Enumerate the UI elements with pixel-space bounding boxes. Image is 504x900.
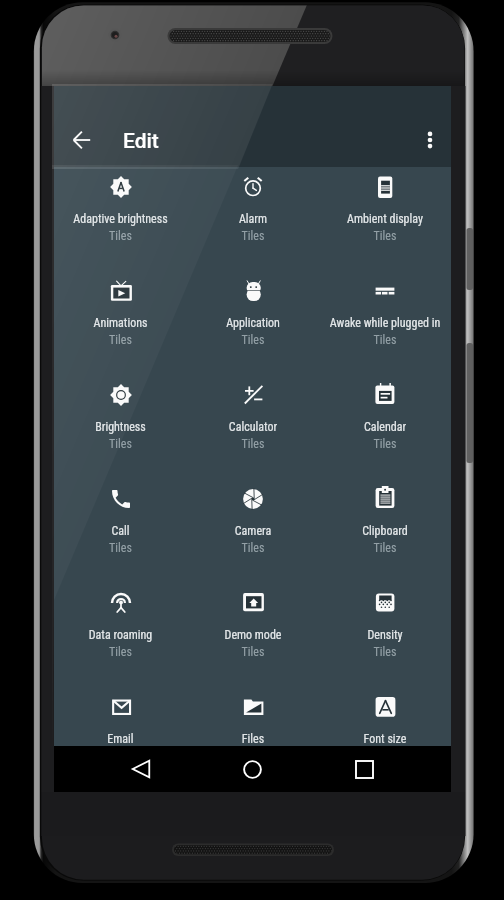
staticText: Ambient display [319,212,451,226]
button[interactable]: Awake while plugged in [319,271,451,375]
staticText: Application [187,316,319,330]
staticText: Tiles [319,437,451,451]
button[interactable]: Demo mode [187,583,319,687]
button[interactable]: Back [121,749,161,789]
staticText: Tiles [54,749,187,763]
button[interactable]: Density [319,583,451,687]
staticText: Tiles [319,333,451,347]
staticText: Tiles [319,541,451,555]
button[interactable]: Ambient display [319,167,451,271]
button[interactable]: More options [410,120,450,160]
staticText: Call [54,524,187,538]
staticText: Tiles [187,645,319,659]
button[interactable]: Email [54,687,187,791]
staticText: Tiles [319,229,451,243]
button[interactable]: Camera [187,479,319,583]
button[interactable]: Call [54,479,187,583]
staticText: Tiles [187,333,319,347]
staticText: Tiles [319,645,451,659]
staticText: Tiles [54,645,187,659]
button[interactable]: Files [187,687,319,791]
staticText: Density [319,628,451,642]
staticText: Tiles [54,541,187,555]
button[interactable]: Recent apps [344,749,384,789]
button[interactable]: Font size [319,687,451,791]
staticText: Tiles [54,333,187,347]
button[interactable]: Adaptive brightness [54,167,187,271]
staticText: Tiles [54,229,187,243]
staticText: Font size [319,732,451,746]
staticText: Adaptive brightness [54,212,187,226]
staticText: Tiles [187,541,319,555]
staticText: Data roaming [54,628,187,642]
staticText: Calendar [319,420,451,434]
staticText: Demo mode [187,628,319,642]
staticText: Edit [123,129,159,154]
staticText: Tiles [187,437,319,451]
button[interactable]: Brightness [54,375,187,479]
staticText: Email [54,732,187,746]
staticText: Brightness [54,420,187,434]
staticText: Animations [54,316,187,330]
button[interactable]: Application [187,271,319,375]
staticText: Calculator [187,420,319,434]
staticText: Tiles [187,749,319,763]
staticText: Files [187,732,319,746]
button[interactable]: Alarm [187,167,319,271]
button[interactable]: Navigate up [62,120,102,160]
staticText: Alarm [187,212,319,226]
button[interactable]: Home [232,749,272,789]
staticText: Clipboard [319,524,451,538]
button[interactable]: Animations [54,271,187,375]
staticText: Tiles [54,437,187,451]
staticText: Tiles [319,749,451,763]
button[interactable]: Calculator [187,375,319,479]
button[interactable]: Calendar [319,375,451,479]
button[interactable]: Clipboard [319,479,451,583]
staticText: Tiles [187,229,319,243]
staticText: Awake while plugged in [319,316,451,330]
button[interactable]: Data roaming [54,583,187,687]
staticText: Camera [187,524,319,538]
